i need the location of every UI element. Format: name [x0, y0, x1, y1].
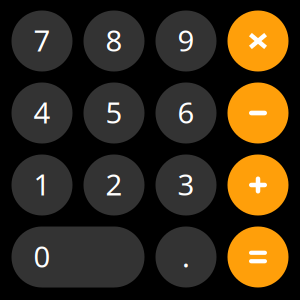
staticText: . — [182, 236, 190, 275]
staticText: 5 — [105, 92, 122, 131]
button[interactable]: Add — [227, 154, 288, 215]
button[interactable]: 6 — [155, 82, 216, 143]
staticText: 2 — [105, 164, 122, 203]
staticText: 6 — [177, 92, 194, 131]
button[interactable]: 8 — [83, 10, 144, 71]
staticText: 8 — [105, 20, 122, 59]
staticText: 4 — [33, 92, 50, 131]
button[interactable]: 5 — [83, 82, 144, 143]
staticText: 1 — [33, 164, 50, 203]
staticText: 7 — [33, 20, 50, 59]
staticText: 0 — [33, 236, 50, 275]
button[interactable]: . — [155, 226, 216, 287]
button[interactable]: 3 — [155, 154, 216, 215]
button[interactable]: 7 — [11, 10, 72, 71]
button[interactable]: 9 — [155, 10, 216, 71]
button[interactable]: Equals — [227, 226, 288, 287]
button[interactable]: 4 — [11, 82, 72, 143]
button[interactable]: 1 — [11, 154, 72, 215]
button[interactable]: 2 — [83, 154, 144, 215]
button[interactable]: 0 — [11, 226, 144, 287]
staticText: 3 — [177, 164, 194, 203]
button[interactable]: Multiply — [227, 10, 288, 71]
staticText: 9 — [177, 20, 194, 59]
button[interactable]: Subtract — [227, 82, 288, 143]
